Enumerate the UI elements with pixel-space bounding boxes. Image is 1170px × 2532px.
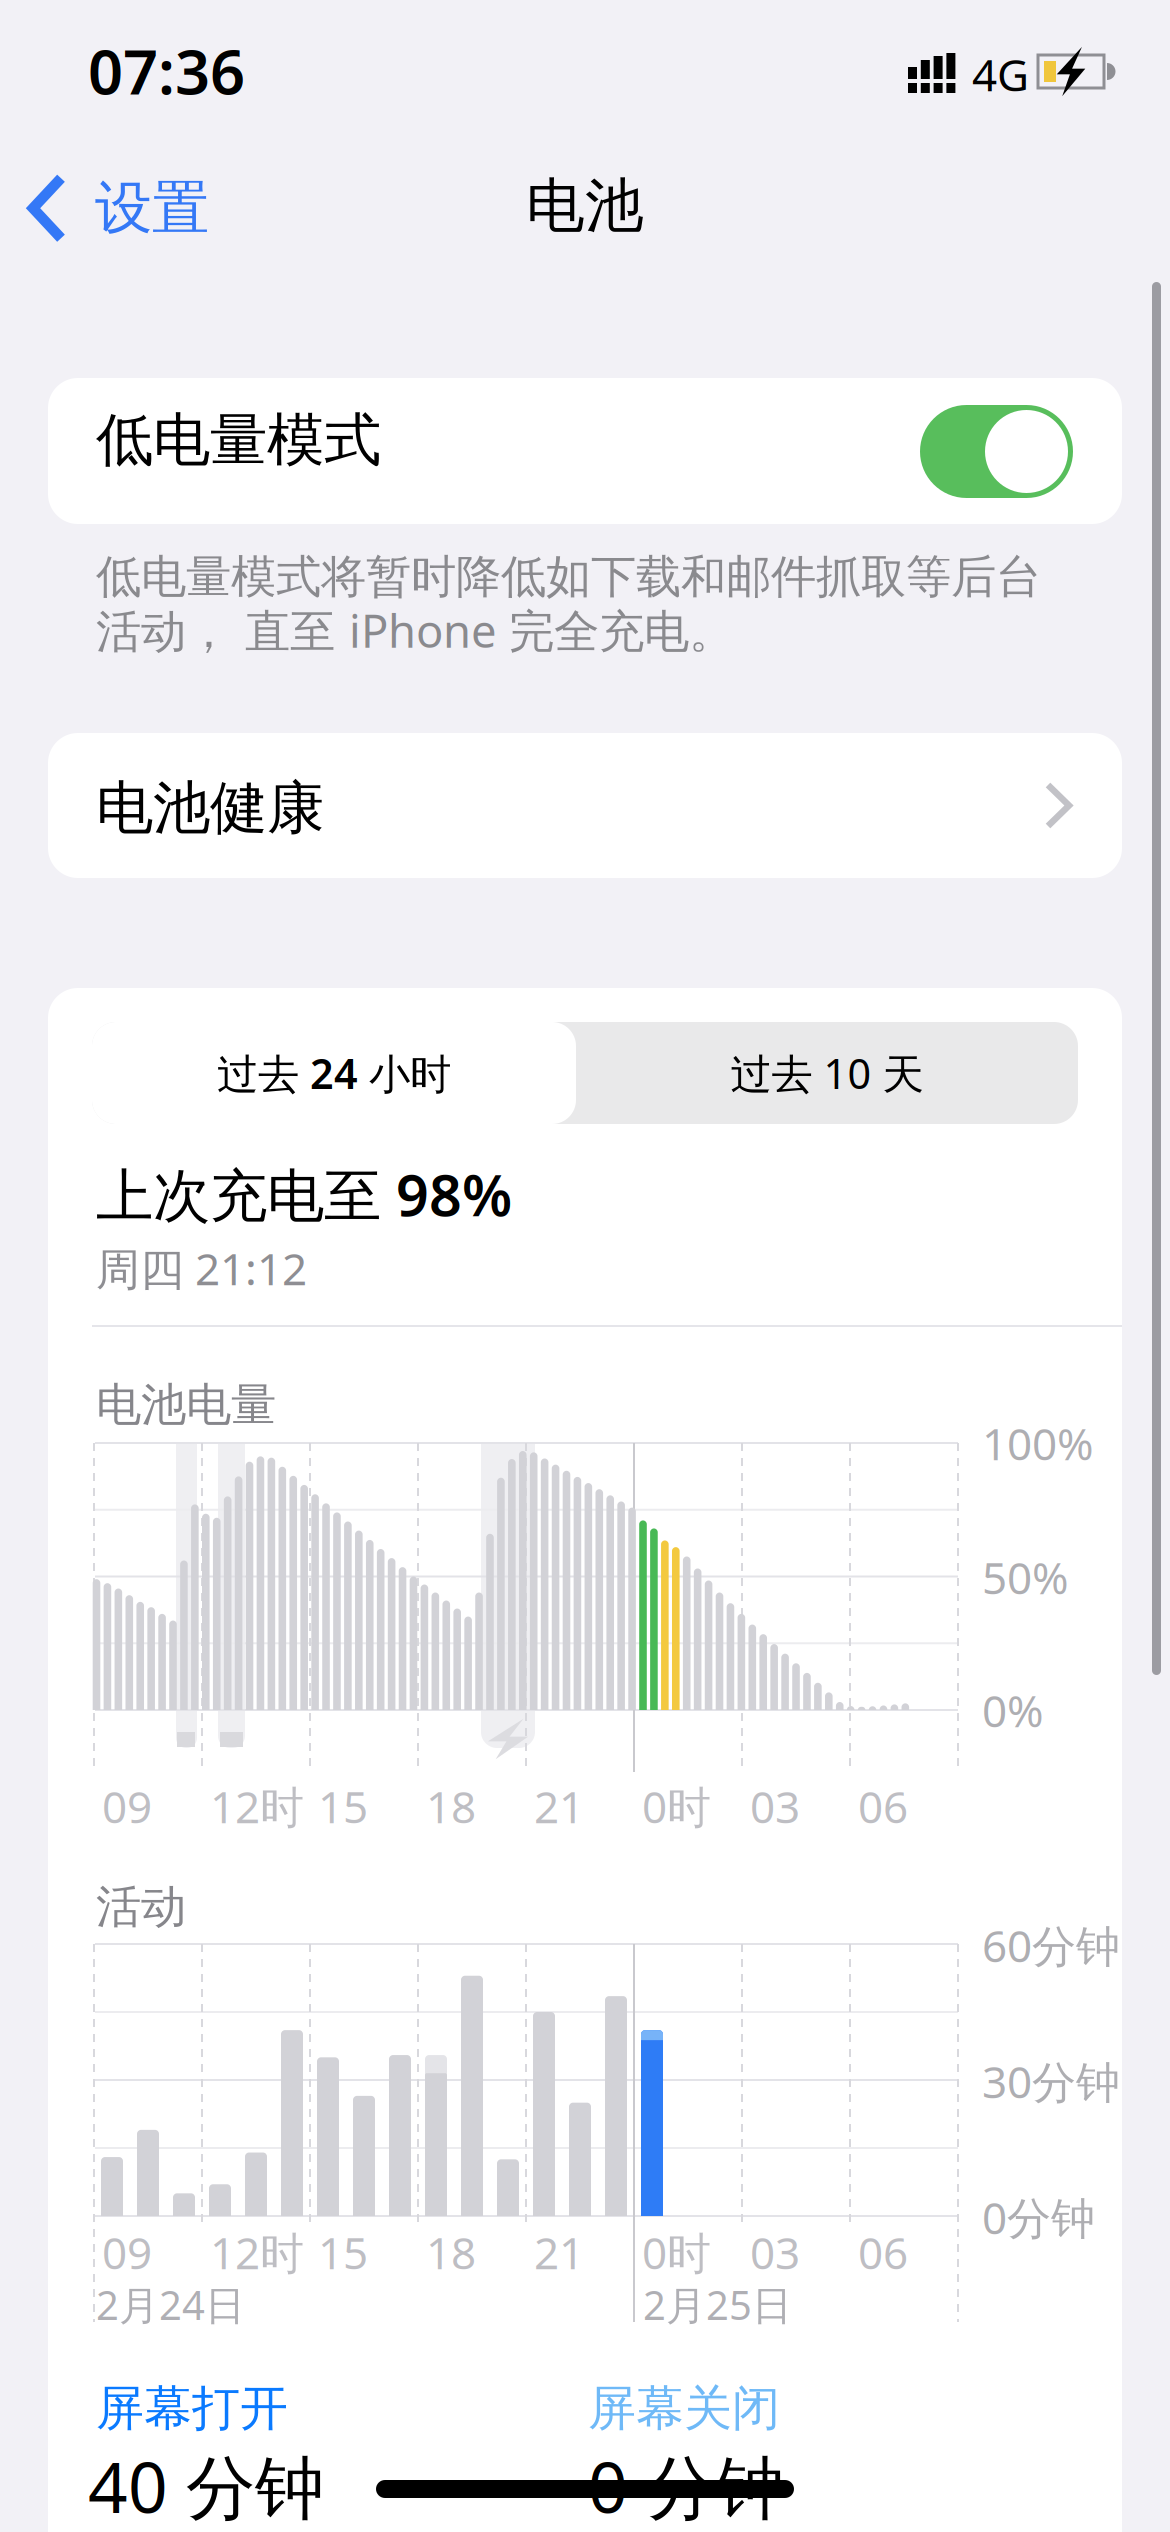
staticText: 低电量模式将暂时降低如下载和邮件抓取等后台 xyxy=(96,549,1041,605)
staticText: 上次充电至 98% xyxy=(96,1156,512,1232)
staticText: 15 xyxy=(318,1777,368,1835)
staticText: 电池电量 xyxy=(96,1377,276,1433)
staticText: 100% xyxy=(982,1414,1094,1472)
staticText: 06 xyxy=(858,1777,908,1835)
staticText: 03 xyxy=(750,2223,800,2281)
staticText: 电池健康 xyxy=(96,773,324,843)
staticText: 屏幕关闭 xyxy=(588,2379,780,2438)
staticText: 过去 10 天 xyxy=(730,1046,923,1100)
staticText: 活动， 直至 iPhone 完全充电。 xyxy=(96,600,734,660)
staticText: 06 xyxy=(858,2223,908,2281)
staticText: 0分钟 xyxy=(982,2188,1095,2246)
staticText: 2月25日 xyxy=(643,2278,792,2331)
staticText: 60分钟 xyxy=(982,1916,1120,1974)
staticText: 03 xyxy=(750,1777,800,1835)
staticText: 21 xyxy=(534,2223,584,2281)
staticText: 0 分钟 xyxy=(588,2440,784,2532)
staticText: 40 分钟 xyxy=(88,2440,324,2532)
staticText: 设置 xyxy=(95,173,209,243)
staticText: 18 xyxy=(426,2223,476,2281)
staticText: 50% xyxy=(982,1548,1069,1606)
staticText: 12时 xyxy=(210,2223,304,2281)
staticText: 0时 xyxy=(642,2223,711,2281)
staticText: 过去 24 小时 xyxy=(217,1046,451,1100)
staticText: 15 xyxy=(318,2223,368,2281)
button[interactable]: 电池健康 xyxy=(48,733,1122,878)
staticText: 2月24日 xyxy=(96,2278,245,2331)
staticText: 活动 xyxy=(96,1879,186,1935)
staticText: 07:36 xyxy=(88,30,245,111)
staticText: 30分钟 xyxy=(982,2052,1120,2110)
staticText: 4G xyxy=(972,45,1029,103)
button[interactable]: 低电量模式 xyxy=(920,405,1073,498)
staticText: 18 xyxy=(426,1777,476,1835)
staticText: 周四 21:12 xyxy=(96,1239,307,1297)
button[interactable]: 过去 10 天 xyxy=(576,1022,1078,1124)
staticText: 屏幕打开 xyxy=(96,2379,288,2438)
staticText: 09 xyxy=(102,2223,152,2281)
staticText: 电池 xyxy=(526,170,644,242)
button[interactable]: 过去 24 小时 xyxy=(92,1022,576,1124)
staticText: 0时 xyxy=(642,1777,711,1835)
staticText: 低电量模式 xyxy=(96,405,381,475)
button[interactable]: 设置 xyxy=(27,173,209,243)
staticText: 09 xyxy=(102,1777,152,1835)
staticText: 0% xyxy=(982,1681,1044,1739)
staticText: 12时 xyxy=(210,1777,304,1835)
staticText: 21 xyxy=(534,1777,584,1835)
